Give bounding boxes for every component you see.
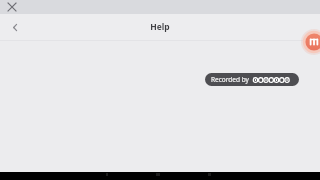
- button[interactable]: Close: [5, 0, 19, 14]
- button[interactable]: Recorder: [301, 29, 320, 55]
- staticText: Recorded by: [211, 75, 249, 84]
- staticText: Help: [150, 21, 170, 33]
- button[interactable]: Back: [4, 16, 26, 38]
